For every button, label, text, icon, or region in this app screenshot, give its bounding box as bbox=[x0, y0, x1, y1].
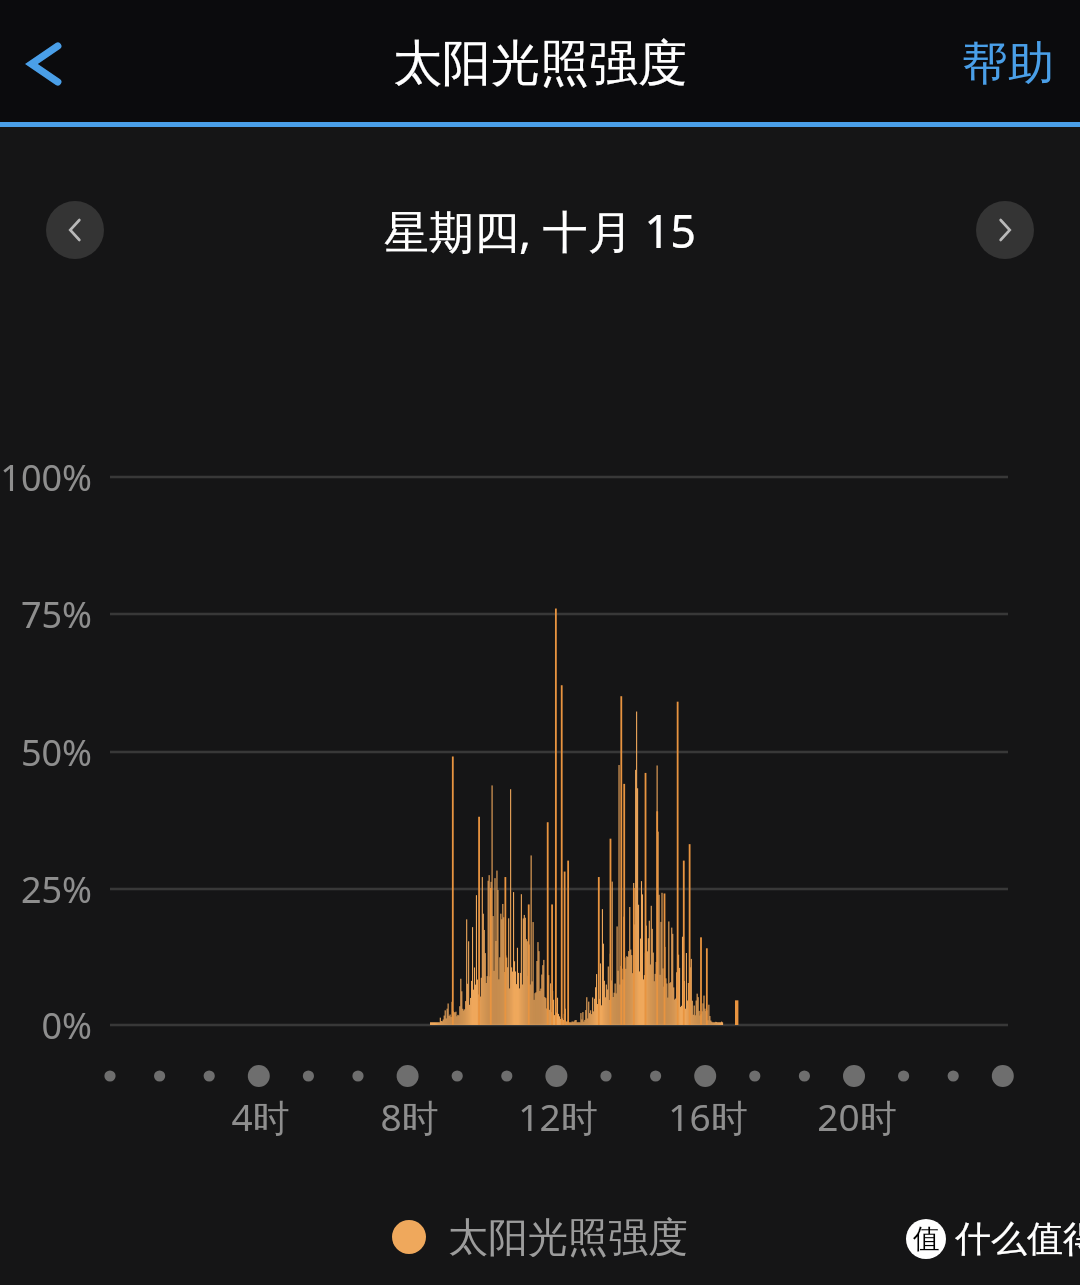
staticText: 值 bbox=[913, 1222, 940, 1256]
staticText: 50% bbox=[20, 728, 92, 777]
staticText: 25% bbox=[20, 865, 92, 914]
button[interactable]: Previous day bbox=[46, 201, 104, 259]
staticText: 20时 bbox=[817, 1091, 897, 1142]
button[interactable]: 帮助 bbox=[936, 17, 1080, 111]
staticText: 100% bbox=[0, 453, 92, 502]
staticText: 太阳光照强度 bbox=[448, 1212, 688, 1262]
staticText: 75% bbox=[20, 590, 92, 639]
staticText: 帮助 bbox=[962, 35, 1054, 93]
staticText: 什么值得买 bbox=[955, 1216, 1080, 1261]
staticText: 星期四, 十月 15 bbox=[384, 200, 696, 261]
button[interactable]: Back bbox=[2, 21, 88, 107]
staticText: 16时 bbox=[668, 1091, 748, 1142]
staticText: 太阳光照强度 bbox=[393, 33, 687, 95]
staticText: 4时 bbox=[231, 1091, 290, 1142]
staticText: 12时 bbox=[518, 1091, 598, 1142]
staticText: 0% bbox=[41, 1001, 92, 1050]
button[interactable]: 太阳光照强度 bbox=[392, 1212, 688, 1262]
staticText: 8时 bbox=[380, 1091, 439, 1142]
button[interactable]: Next day bbox=[976, 201, 1034, 259]
